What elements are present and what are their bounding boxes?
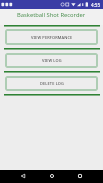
button[interactable]: Recent apps <box>72 170 88 183</box>
button[interactable]: VIEW LOG <box>5 53 98 68</box>
staticText: DELETE LOG <box>40 81 64 86</box>
staticText: VIEW PERFORMANCE <box>31 35 73 40</box>
button[interactable]: Back <box>14 170 31 183</box>
staticText: VIEW LOG <box>42 58 62 63</box>
button[interactable]: Home <box>44 170 60 183</box>
button[interactable]: VIEW PERFORMANCE <box>5 29 98 45</box>
staticText: 4:55 <box>91 2 101 8</box>
button[interactable]: DELETE LOG <box>5 76 98 91</box>
staticText: Basketball Shot Recorder <box>17 11 86 19</box>
